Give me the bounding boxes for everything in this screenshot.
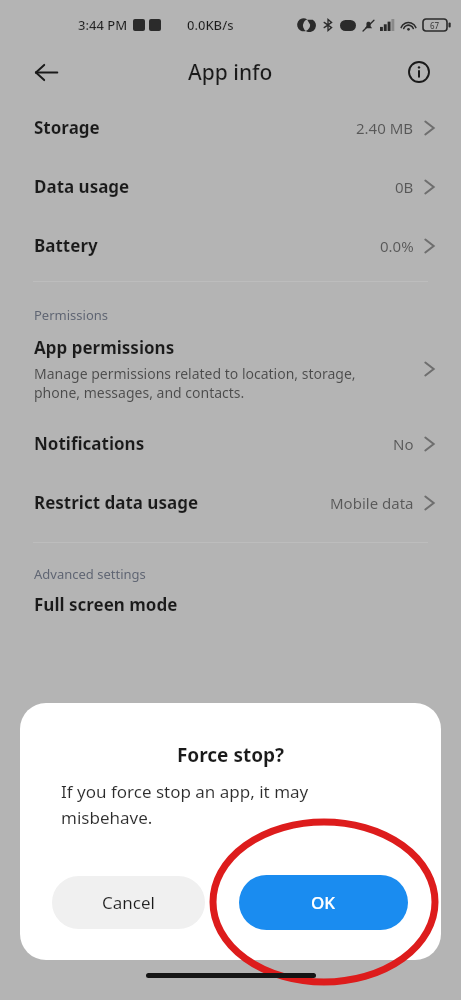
staticText: Full screen mode [34,593,178,616]
staticText: Restrict data usage [34,491,199,514]
staticText: 2.40 MB [356,118,414,138]
staticText: 0.0KB/s [187,16,234,34]
staticText: Cancel [102,891,155,914]
staticText: No [393,434,414,454]
staticText: App permissions [34,336,175,359]
staticText: 0.0% [380,236,414,256]
staticText: Notifications [34,432,145,455]
button[interactable]: OK [239,875,408,930]
button[interactable]: Notifications [0,432,461,455]
staticText: Permissions [34,306,109,324]
button[interactable]: App permissions [0,336,461,402]
staticText: Data usage [34,175,130,198]
staticText: 3:44 PM [78,16,128,34]
button[interactable]: Cancel [52,876,205,929]
staticText: 0B [395,177,414,197]
staticText: 67 [430,20,440,31]
button[interactable]: Back [24,50,68,94]
button[interactable]: Data usage [0,175,461,198]
staticText: Mobile data [330,493,414,513]
button[interactable]: Storage [0,116,461,139]
staticText: Manage permissions related to location, … [34,364,356,402]
staticText: Storage [34,116,100,139]
staticText: Force stop? [20,742,441,768]
button[interactable]: App details [397,50,441,94]
staticText: Advanced settings [34,565,146,583]
staticText: OK [311,891,336,914]
button[interactable]: Restrict data usage [0,491,461,514]
staticText: If you force stop an app, it may misbeha… [61,780,309,829]
button[interactable]: Battery [0,234,461,257]
staticText: App info [188,58,273,87]
staticText: Battery [34,234,98,257]
